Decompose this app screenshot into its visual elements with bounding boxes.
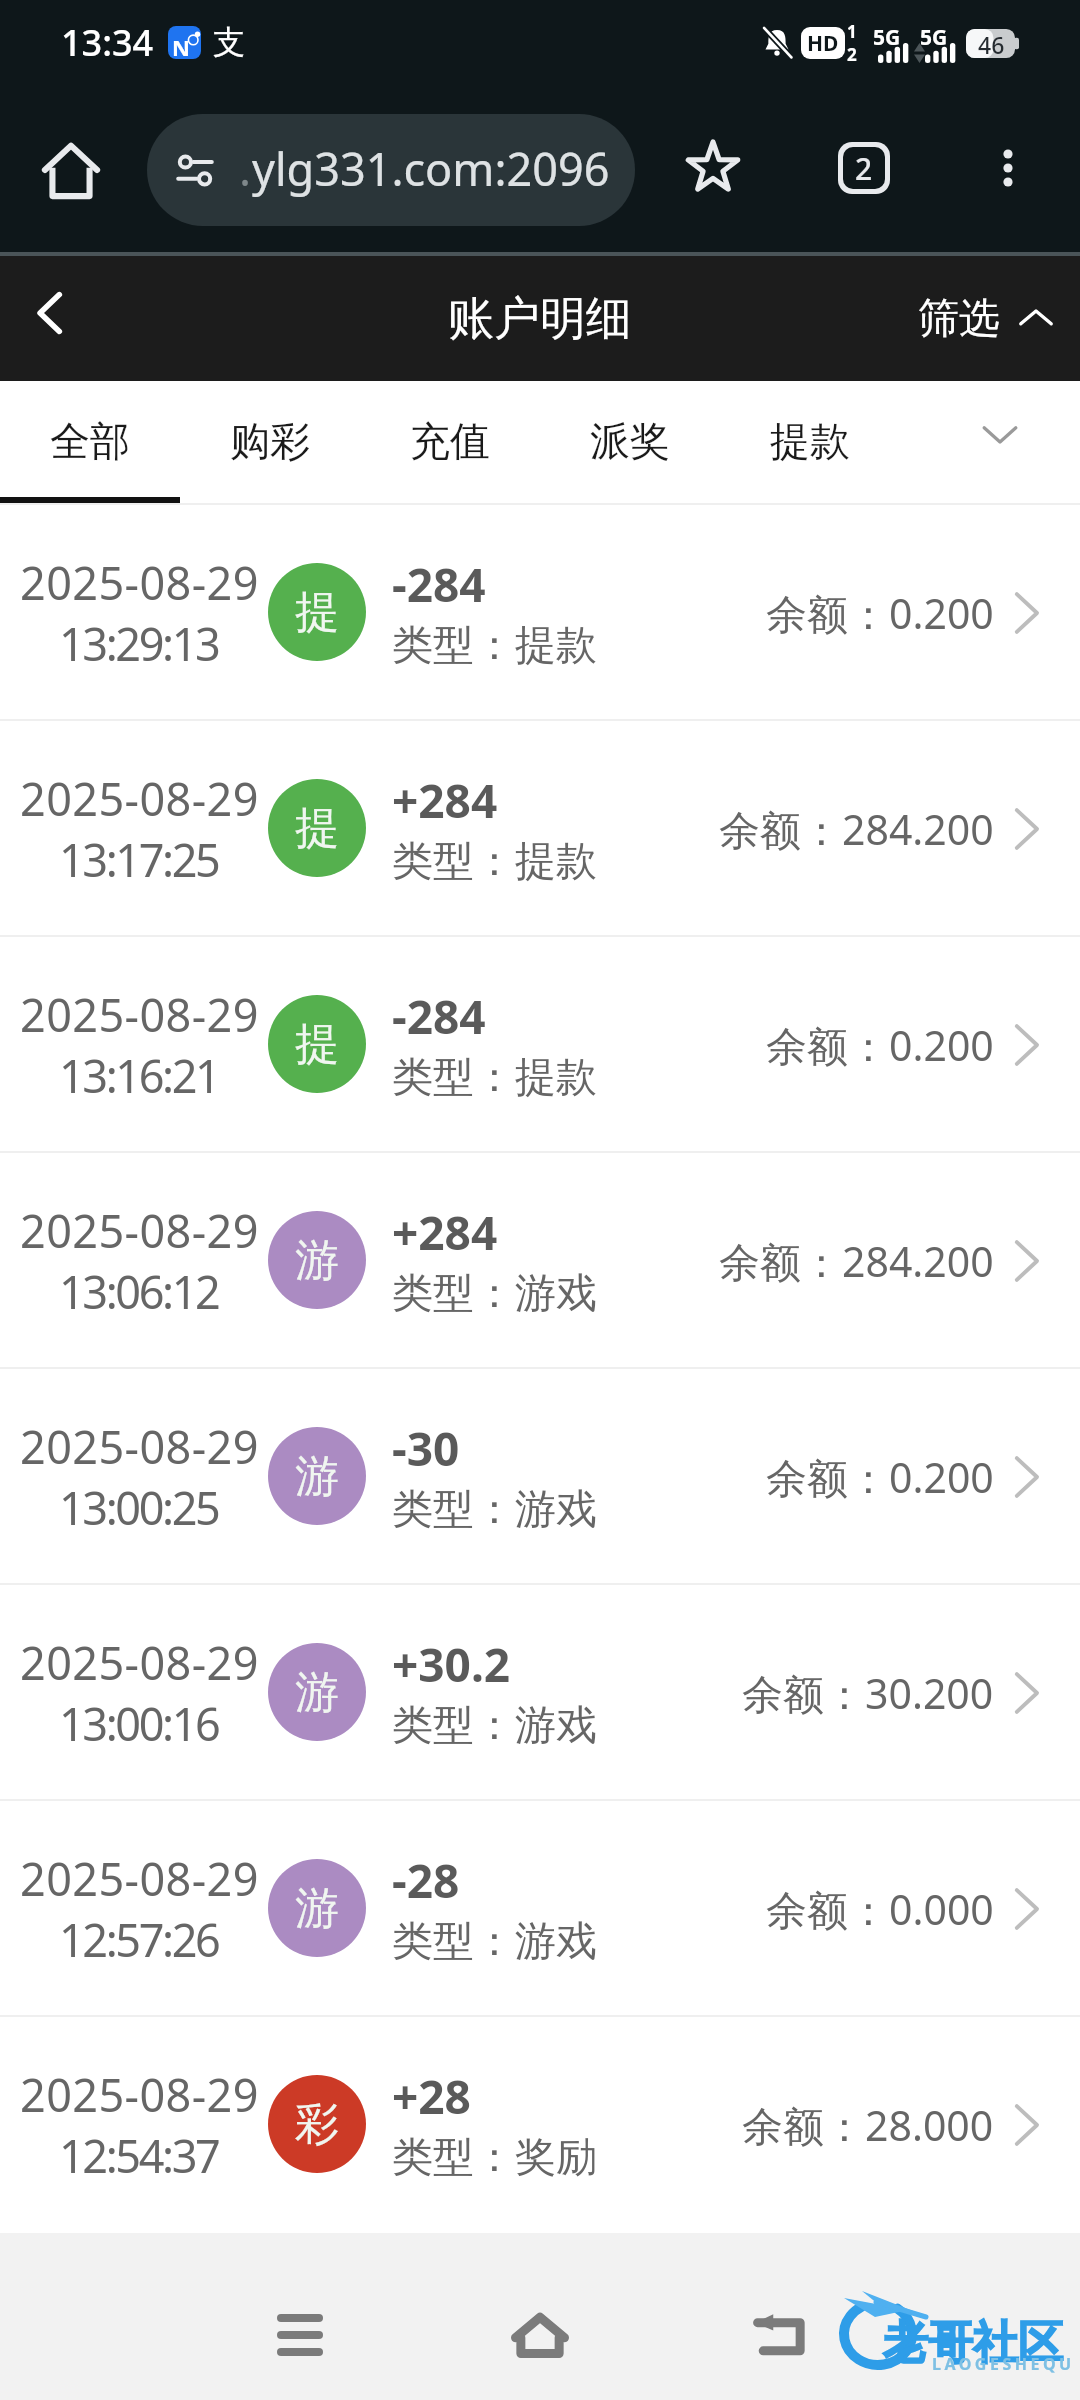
staticText: 类型：游戏 xyxy=(392,1700,597,1752)
button[interactable]: 提款 xyxy=(720,381,900,505)
staticText: 2025-08-29 xyxy=(20,984,259,1045)
staticText: 2025-08-29 xyxy=(20,1632,259,1693)
button[interactable]: 2025-08-29 xyxy=(0,1369,1080,1583)
button[interactable]: Back xyxy=(725,2280,835,2390)
staticText: 13:34 xyxy=(61,18,154,67)
staticText: 余额：284.200 xyxy=(719,801,994,857)
staticText: 余额：284.200 xyxy=(719,1233,994,1289)
staticText: +284 xyxy=(392,1201,498,1264)
staticText: -28 xyxy=(392,1849,460,1912)
button[interactable]: More options xyxy=(963,123,1053,213)
staticText: 余额：28.000 xyxy=(742,2097,994,2153)
button[interactable]: 2025-08-29 xyxy=(0,505,1080,719)
staticText: +28 xyxy=(392,2065,471,2128)
staticText: 2025-08-29 xyxy=(20,1848,259,1909)
button[interactable]: Expand xyxy=(970,404,1030,464)
staticText: 13:00:25 xyxy=(59,1477,219,1538)
staticText: 类型：提款 xyxy=(392,1052,597,1104)
staticText: 提 xyxy=(295,801,339,856)
staticText: 13:17:25 xyxy=(59,829,219,890)
button[interactable]: 2025-08-29 xyxy=(0,2017,1080,2231)
staticText: -284 xyxy=(392,553,486,616)
staticText: 类型：游戏 xyxy=(392,1916,597,1968)
staticText: 2025-08-29 xyxy=(20,2064,259,2125)
staticText: 全部 xyxy=(50,416,130,466)
staticText: 提款 xyxy=(770,416,850,466)
staticText: LAOGESHEQU xyxy=(932,2353,1075,2375)
staticText: 提 xyxy=(295,1017,339,1072)
staticText: -284 xyxy=(392,985,486,1048)
button[interactable]: 筛选 xyxy=(918,293,1056,345)
staticText: 游 xyxy=(295,1449,339,1504)
staticText: 5G xyxy=(873,23,901,52)
staticText: 2 xyxy=(855,148,873,189)
staticText: 类型：游戏 xyxy=(392,1484,597,1536)
button[interactable]: Home xyxy=(28,127,113,212)
staticText: 筛选 xyxy=(918,293,1000,345)
button[interactable]: Back xyxy=(0,258,107,368)
staticText: 13:29:13 xyxy=(59,613,219,674)
staticText: 账户明细 xyxy=(448,290,632,348)
button[interactable]: 2025-08-29 xyxy=(0,1801,1080,2015)
staticText: 游 xyxy=(295,1665,339,1720)
button[interactable]: 充值 xyxy=(360,381,540,505)
button[interactable]: Home xyxy=(485,2280,595,2390)
button[interactable]: . xyxy=(147,114,635,226)
staticText: 游 xyxy=(295,1881,339,1936)
staticText: 类型：提款 xyxy=(392,836,597,888)
staticText: 13:00:16 xyxy=(59,1693,219,1754)
staticText: 2025-08-29 xyxy=(20,552,259,613)
staticText: 彩 xyxy=(295,2097,339,2152)
staticText: 余额：0.200 xyxy=(766,1449,994,1505)
button[interactable]: 购彩 xyxy=(180,381,360,505)
staticText: 老哥社区 xyxy=(883,2315,1063,2372)
button[interactable]: 2025-08-29 xyxy=(0,721,1080,935)
staticText: 5G xyxy=(920,23,948,52)
staticText: 13:16:21 xyxy=(59,1045,219,1106)
staticText: 余额：0.200 xyxy=(766,1017,994,1073)
button[interactable]: Tabs xyxy=(819,123,909,213)
button[interactable]: 派奖 xyxy=(540,381,720,505)
staticText: 2025-08-29 xyxy=(20,1200,259,1261)
staticText: 类型：游戏 xyxy=(392,1268,597,1320)
staticText: N xyxy=(172,32,190,59)
staticText: 支 xyxy=(213,22,245,62)
staticText: 购彩 xyxy=(230,416,310,466)
staticText: +30.2 xyxy=(392,1633,511,1696)
button[interactable]: Recent apps xyxy=(245,2280,355,2390)
staticText: 提 xyxy=(295,585,339,640)
staticText: 类型：提款 xyxy=(392,620,597,672)
staticText: +284 xyxy=(392,769,498,832)
staticText: -30 xyxy=(392,1417,460,1480)
button[interactable]: 2025-08-29 xyxy=(0,1153,1080,1367)
button[interactable]: 全部 xyxy=(0,381,180,505)
button[interactable]: Bookmark xyxy=(668,123,758,213)
staticText: 1 xyxy=(847,20,857,43)
staticText: 充值 xyxy=(410,416,490,466)
staticText: 余额：0.200 xyxy=(766,585,994,641)
staticText: 类型：奖励 xyxy=(392,2132,597,2184)
staticText: 派奖 xyxy=(590,416,670,466)
staticText: ylg331.com:2096 xyxy=(252,138,610,199)
staticText: HD xyxy=(807,29,839,58)
staticText: 2025-08-29 xyxy=(20,768,259,829)
staticText: 2025-08-29 xyxy=(20,1416,259,1477)
staticText: 46 xyxy=(978,29,1005,58)
button[interactable]: 2025-08-29 xyxy=(0,937,1080,1151)
button[interactable]: 2025-08-29 xyxy=(0,1585,1080,1799)
staticText: 2 xyxy=(847,43,857,66)
staticText: 12:57:26 xyxy=(59,1909,219,1970)
staticText: 余额：0.000 xyxy=(766,1881,994,1937)
staticText: 游 xyxy=(295,1233,339,1288)
staticText: 13:06:12 xyxy=(59,1261,219,1322)
staticText: 12:54:37 xyxy=(59,2125,219,2186)
staticText: 余额：30.200 xyxy=(742,1665,994,1721)
staticText: . xyxy=(239,138,252,199)
